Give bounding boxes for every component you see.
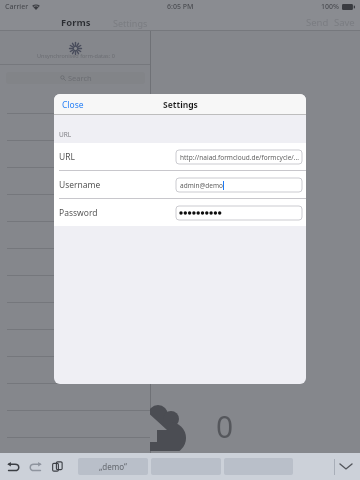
button[interactable] [0,222,151,249]
staticText: Send [306,16,329,29]
button[interactable]: Hide keyboard [335,453,357,480]
button[interactable] [0,141,151,168]
button[interactable]: Undo [3,453,23,480]
staticText: Close [62,99,84,111]
button[interactable] [0,276,151,303]
staticText: URL [59,151,75,163]
staticText: Password [59,207,98,219]
staticText: admin@demo [180,181,223,190]
button[interactable] [0,168,151,195]
staticText: URL [59,130,72,139]
staticText: Username [59,179,101,191]
button[interactable] [0,87,151,114]
staticText: 100% [321,2,339,12]
button[interactable] [0,411,151,438]
button[interactable]: Redo [25,453,45,480]
button[interactable]: Save [334,16,355,29]
button[interactable]: Copy [47,453,67,480]
button[interactable] [0,114,151,141]
button[interactable]: Close [62,94,84,115]
staticText: Unsynchronised form-datas: 0 [37,52,115,59]
staticText: „demo“ [99,461,127,472]
button[interactable] [0,303,151,330]
staticText: Forms [61,16,91,29]
staticText: Save [334,16,355,29]
button[interactable]: Forms [61,16,91,29]
button[interactable]: URL [54,143,306,170]
button[interactable] [0,384,151,411]
button[interactable]: Password [54,199,306,226]
staticText: http://naiad.formcloud.de/formcycle/... [180,153,299,162]
button[interactable]: Username [54,171,306,198]
button[interactable]: Send [306,16,329,29]
staticText: Settings [113,17,148,29]
button[interactable]: „demo“ [78,458,148,475]
button[interactable] [0,357,151,384]
button[interactable]: Settings [113,17,148,29]
staticText: Settings [163,99,198,111]
staticText: 6:05 PM [167,2,194,12]
staticText: Search [68,73,92,83]
staticText: Carrier [5,2,29,12]
button[interactable] [0,330,151,357]
button[interactable] [0,249,151,276]
button[interactable] [0,195,151,222]
staticText: 0 [216,406,234,447]
